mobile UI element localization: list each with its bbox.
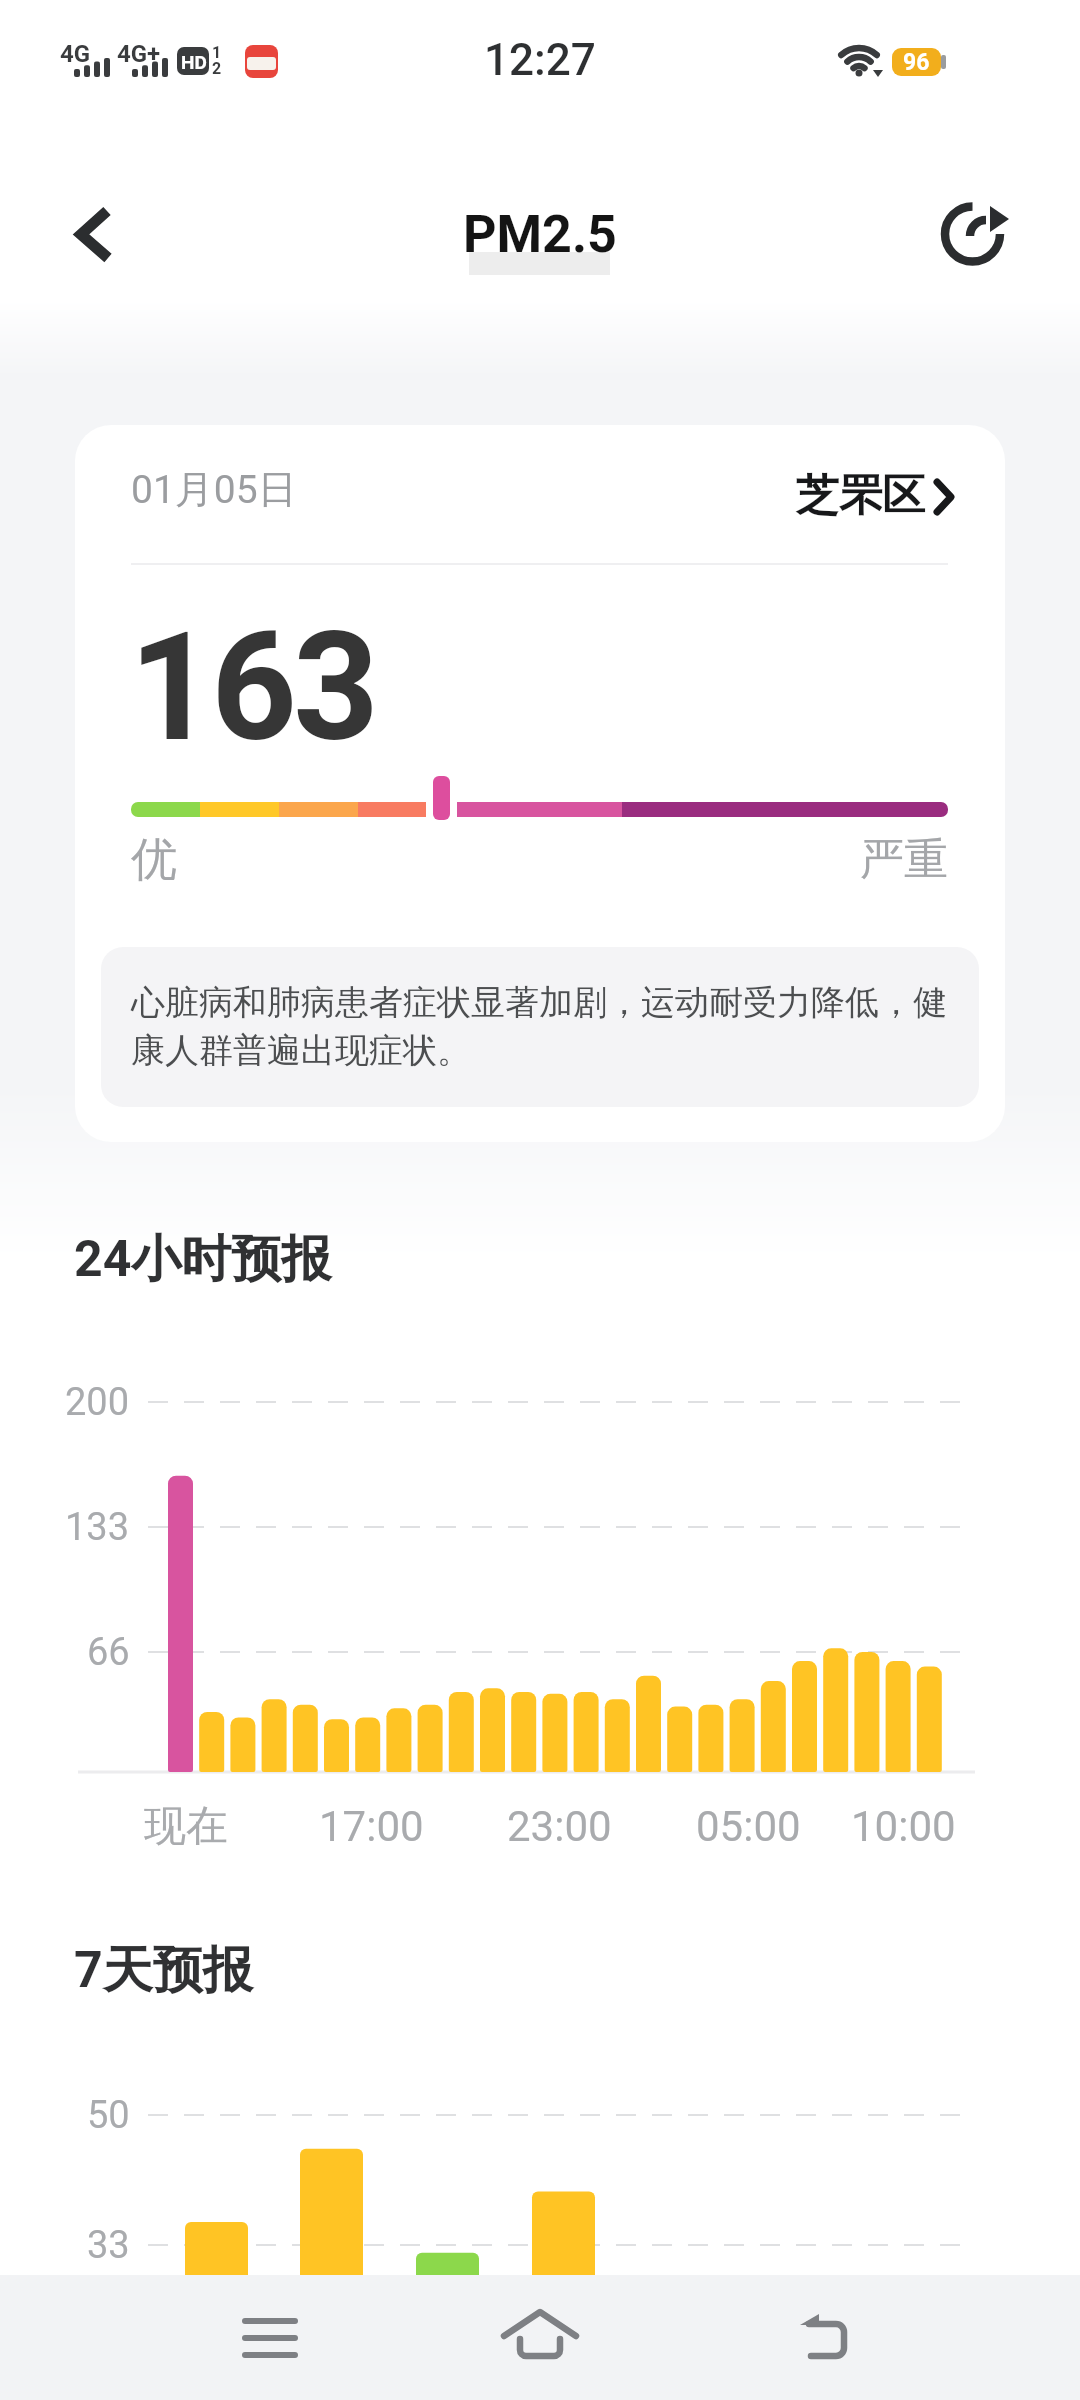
staticText: 7天预报 — [74, 1939, 253, 2002]
button[interactable] — [480, 2275, 600, 2400]
staticText: 心脏病和肺病患者症状显著加剧，运动耐受力降低，健 康人群普遍出现症状。 — [131, 981, 947, 1072]
staticText: 50 — [87, 2093, 130, 2138]
staticText: 05:00 — [696, 1802, 801, 1851]
staticText: 严重 — [860, 832, 948, 887]
staticText: 66 — [87, 1630, 130, 1675]
staticText: PM2.5 — [463, 204, 617, 265]
staticText: 1 — [212, 43, 222, 62]
staticText: 200 — [65, 1380, 130, 1425]
staticText: 01月05日 — [131, 465, 297, 514]
button[interactable] — [210, 2275, 330, 2400]
staticText: 4G+ — [117, 40, 161, 68]
staticText: 4G — [60, 40, 91, 68]
staticText: 33 — [87, 2223, 130, 2268]
button[interactable]: 芝罘区 — [796, 469, 955, 523]
staticText: 133 — [65, 1505, 130, 1550]
staticText: 163 — [129, 600, 376, 776]
button[interactable] — [930, 192, 1018, 280]
staticText: 12:27 — [484, 34, 596, 84]
staticText: 现在 — [144, 1800, 228, 1852]
staticText: 96 — [903, 49, 930, 76]
staticText: 24小时预报 — [74, 1228, 332, 1291]
staticText: 2 — [212, 59, 222, 78]
button[interactable] — [762, 2275, 882, 2400]
staticText: 芝罘区 — [796, 469, 925, 523]
staticText: 17:00 — [319, 1802, 424, 1851]
staticText: 10:00 — [851, 1802, 956, 1851]
button[interactable] — [50, 190, 140, 280]
staticText: 23:00 — [507, 1802, 612, 1851]
staticText: HD — [181, 51, 207, 73]
staticText: 优 — [131, 831, 177, 889]
